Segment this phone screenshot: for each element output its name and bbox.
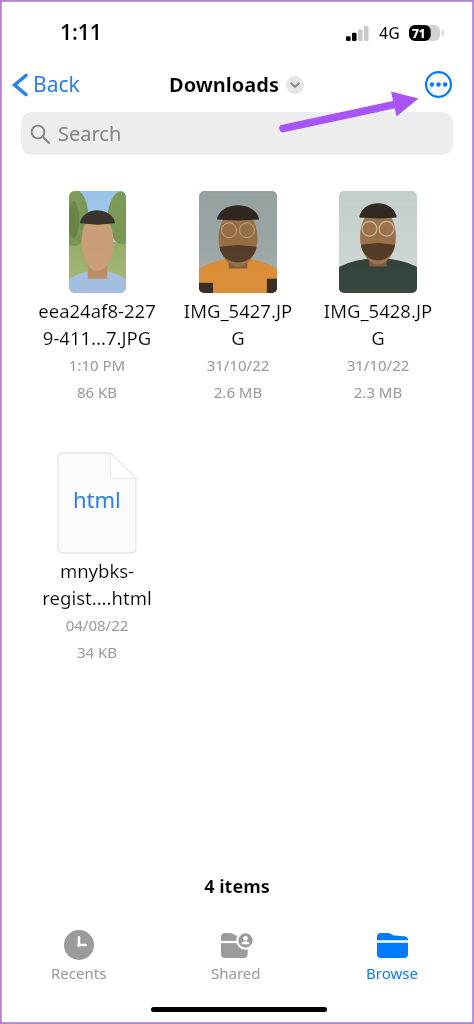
staticText: 4G	[379, 22, 400, 44]
button[interactable]: More options	[423, 69, 454, 100]
button[interactable]: Search	[30, 112, 453, 155]
staticText: 34 KB	[31, 642, 163, 662]
staticText: html	[73, 484, 121, 514]
staticText: 1:11	[60, 18, 102, 47]
staticText: 86 KB	[31, 382, 163, 402]
staticText: Recents	[51, 963, 107, 983]
staticText: 4 items	[0, 874, 474, 899]
staticText: Browse	[366, 963, 418, 983]
staticText: Search	[58, 120, 122, 147]
staticText: Shared	[211, 963, 261, 983]
staticText: 1:10 PM	[31, 355, 163, 375]
staticText: 2.3 MB	[312, 382, 444, 402]
staticText: 04/08/22	[31, 615, 163, 635]
button[interactable]: eea24af8-227 9-411...7.JPG	[27, 185, 167, 402]
button[interactable]: html	[27, 447, 167, 662]
button[interactable]: Back	[12, 70, 80, 99]
staticText: IMG_5427.JP G	[168, 298, 308, 351]
staticText: 2.6 MB	[172, 382, 304, 402]
staticText: Downloads	[169, 71, 279, 98]
button[interactable]: Recents	[26, 925, 132, 983]
staticText: 31/10/22	[312, 355, 444, 375]
button[interactable]: IMG_5427.JP G	[168, 185, 308, 402]
button[interactable]: Shared	[183, 925, 289, 983]
staticText: IMG_5428.JP G	[308, 298, 448, 351]
staticText: mnybks- regist....html	[27, 558, 167, 611]
button[interactable]: Downloads	[169, 71, 304, 98]
button[interactable]: Browse	[339, 925, 445, 983]
staticText: 71	[412, 25, 426, 41]
staticText: eea24af8-227 9-411...7.JPG	[27, 298, 167, 351]
staticText: 31/10/22	[172, 355, 304, 375]
staticText: Back	[33, 70, 80, 99]
button[interactable]: IMG_5428.JP G	[308, 185, 448, 402]
